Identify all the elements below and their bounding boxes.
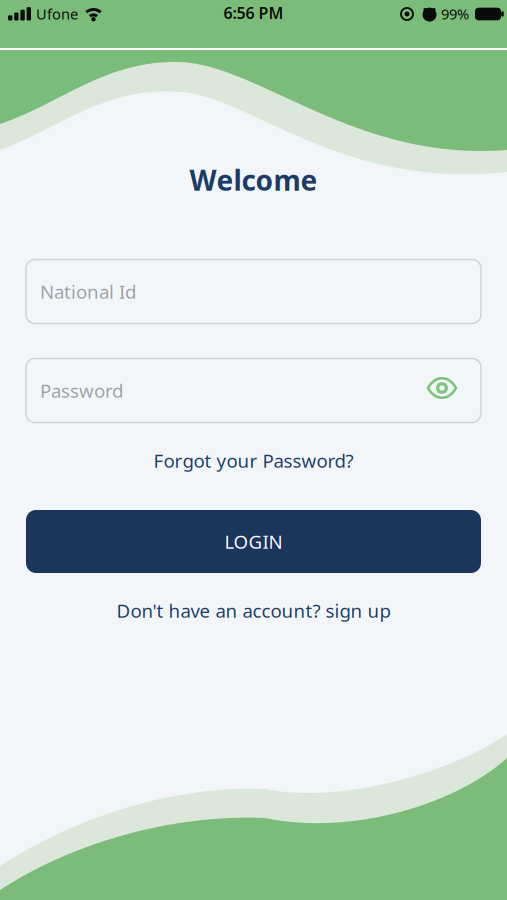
staticText: National Id [40,279,136,304]
button[interactable]: Forgot your Password? [153,448,353,473]
button[interactable]: Show password [422,371,462,405]
staticText: LOGIN [224,529,282,554]
staticText: Password [40,378,123,403]
staticText: 6:56 PM [223,2,283,23]
staticText: Forgot your Password? [153,448,353,473]
button[interactable]: Don't have an account? sign up [116,598,390,623]
staticText: Welcome [189,161,317,199]
staticText: Ufone [36,4,78,24]
staticText: Don't have an account? sign up [116,598,390,623]
button[interactable]: LOGIN [26,510,481,573]
staticText: 99% [441,4,469,24]
